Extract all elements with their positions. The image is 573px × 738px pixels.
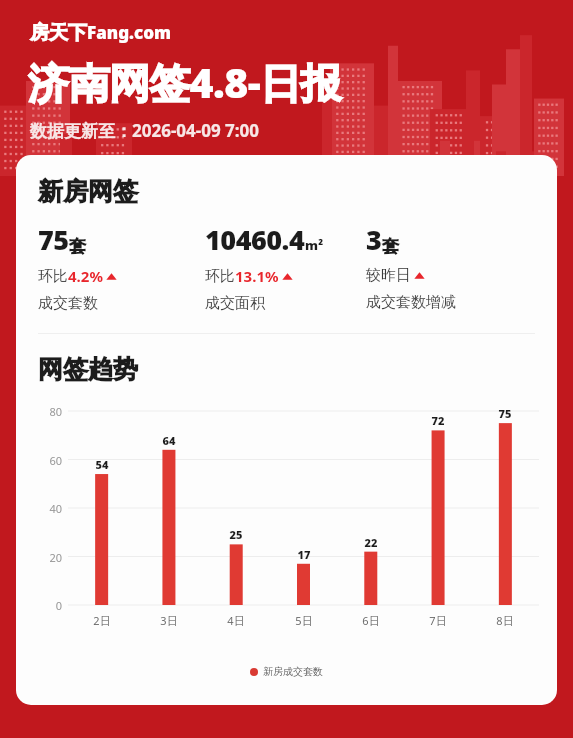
staticText: 75: [38, 221, 69, 258]
staticText: 72: [422, 413, 454, 428]
button[interactable]: 房天下 Fang.com: [30, 21, 171, 45]
staticText: 6日: [351, 613, 391, 628]
staticText: 17: [288, 547, 320, 562]
staticText: 网签趋势: [38, 354, 138, 385]
staticText: 22: [355, 535, 387, 550]
staticText: 济南网签4.8-日报: [28, 54, 341, 110]
staticText: 套: [69, 236, 86, 257]
staticText: 20: [38, 550, 62, 565]
staticText: 房天下: [30, 21, 87, 45]
staticText: 13.1%: [235, 266, 279, 286]
button[interactable]: 10460.4: [205, 221, 324, 313]
staticText: 较昨日: [366, 266, 411, 285]
staticText: 80: [38, 404, 62, 419]
staticText: 64: [153, 433, 185, 448]
staticText: 3: [366, 221, 382, 258]
staticText: 环比: [38, 267, 68, 286]
staticText: 3日: [149, 613, 189, 628]
staticText: 25: [220, 527, 252, 542]
staticText: 5日: [284, 613, 324, 628]
button[interactable]: 75: [38, 221, 117, 313]
staticText: 10460.4: [205, 221, 305, 258]
staticText: 40: [38, 501, 62, 516]
staticText: 数据更新至：2026-04-09 7:00: [30, 119, 260, 142]
staticText: 4.2%: [68, 266, 103, 286]
staticText: m²: [305, 236, 324, 254]
staticText: 54: [86, 457, 118, 472]
staticText: 成交面积: [205, 294, 265, 313]
button[interactable]: 新房成交套数: [16, 665, 557, 678]
staticText: 环比: [205, 267, 235, 286]
button[interactable]: 3: [366, 221, 456, 312]
staticText: 2日: [82, 613, 122, 628]
staticText: 套: [382, 236, 399, 257]
staticText: 成交套数: [38, 294, 98, 313]
staticText: 60: [38, 453, 62, 468]
staticText: 4日: [216, 613, 256, 628]
staticText: 8日: [485, 613, 525, 628]
staticText: 7日: [418, 613, 458, 628]
staticText: 75: [489, 406, 521, 421]
staticText: 成交套数增减: [366, 293, 456, 312]
staticText: 0: [38, 598, 62, 613]
staticText: 新房成交套数: [263, 665, 323, 678]
staticText: Fang.com: [87, 21, 171, 44]
staticText: 新房网签: [38, 176, 138, 207]
